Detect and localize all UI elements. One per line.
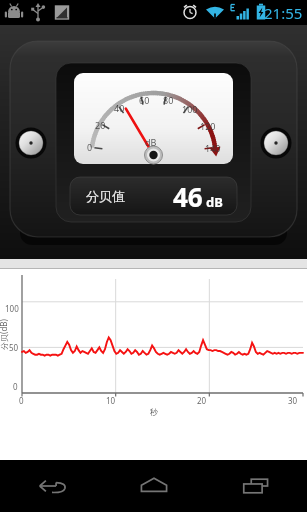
staticText: 40 bbox=[114, 102, 125, 114]
staticText: 0 bbox=[19, 395, 24, 406]
staticText: 0 bbox=[13, 381, 18, 392]
button[interactable]: Decibel history chart bbox=[0, 259, 307, 460]
staticText: 20 bbox=[95, 119, 106, 131]
button[interactable]: Sound level meter bbox=[0, 25, 307, 259]
button[interactable]: Recent apps bbox=[205, 460, 307, 512]
staticText: dB bbox=[206, 193, 223, 211]
staticText: 秒 bbox=[150, 407, 158, 417]
staticText: 分贝值 bbox=[86, 188, 125, 204]
staticText: 46 bbox=[173, 179, 203, 214]
staticText: 60 bbox=[139, 94, 150, 106]
staticText: 10 bbox=[106, 395, 116, 406]
staticText: 80 bbox=[163, 94, 174, 106]
button[interactable]: Home bbox=[103, 460, 205, 512]
staticText: 120 bbox=[200, 120, 216, 132]
staticText: 30 bbox=[288, 395, 298, 406]
staticText: 140 bbox=[205, 142, 221, 154]
staticText: 0 bbox=[87, 141, 93, 153]
button[interactable]: Back bbox=[0, 460, 103, 512]
staticText: 50 bbox=[9, 342, 19, 353]
staticText: dB bbox=[145, 136, 157, 148]
staticText: 21:55 bbox=[264, 3, 303, 23]
staticText: 20 bbox=[197, 395, 207, 406]
staticText: 分贝(dB) bbox=[0, 319, 9, 350]
staticText: 100 bbox=[5, 303, 19, 314]
staticText: 100 bbox=[182, 103, 198, 115]
